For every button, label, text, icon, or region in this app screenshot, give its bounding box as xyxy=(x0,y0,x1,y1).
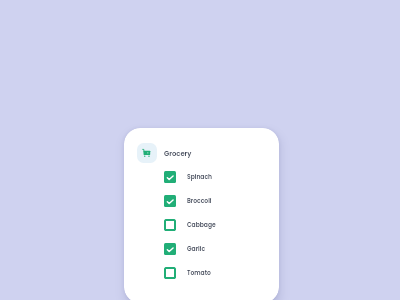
button[interactable]: Checked xyxy=(164,237,254,261)
button[interactable]: Unchecked xyxy=(164,213,254,237)
staticText: Garlic xyxy=(187,245,206,253)
button[interactable]: Grocery xyxy=(137,143,192,163)
staticText: Spinach xyxy=(187,173,213,181)
other: Checked xyxy=(164,195,176,207)
other: Grocery xyxy=(142,148,152,158)
other: Unchecked xyxy=(164,219,176,231)
button[interactable]: Checked xyxy=(164,189,254,213)
staticText: Cabbage xyxy=(187,221,216,229)
button[interactable]: Checked xyxy=(164,165,254,189)
staticText: Tomato xyxy=(187,269,211,277)
button[interactable]: Unchecked xyxy=(164,261,254,285)
other: Unchecked xyxy=(164,267,176,279)
other: Checked xyxy=(164,171,176,183)
other: Checked xyxy=(164,243,176,255)
staticText: Grocery xyxy=(164,149,192,159)
staticText: Broccoli xyxy=(187,197,212,205)
